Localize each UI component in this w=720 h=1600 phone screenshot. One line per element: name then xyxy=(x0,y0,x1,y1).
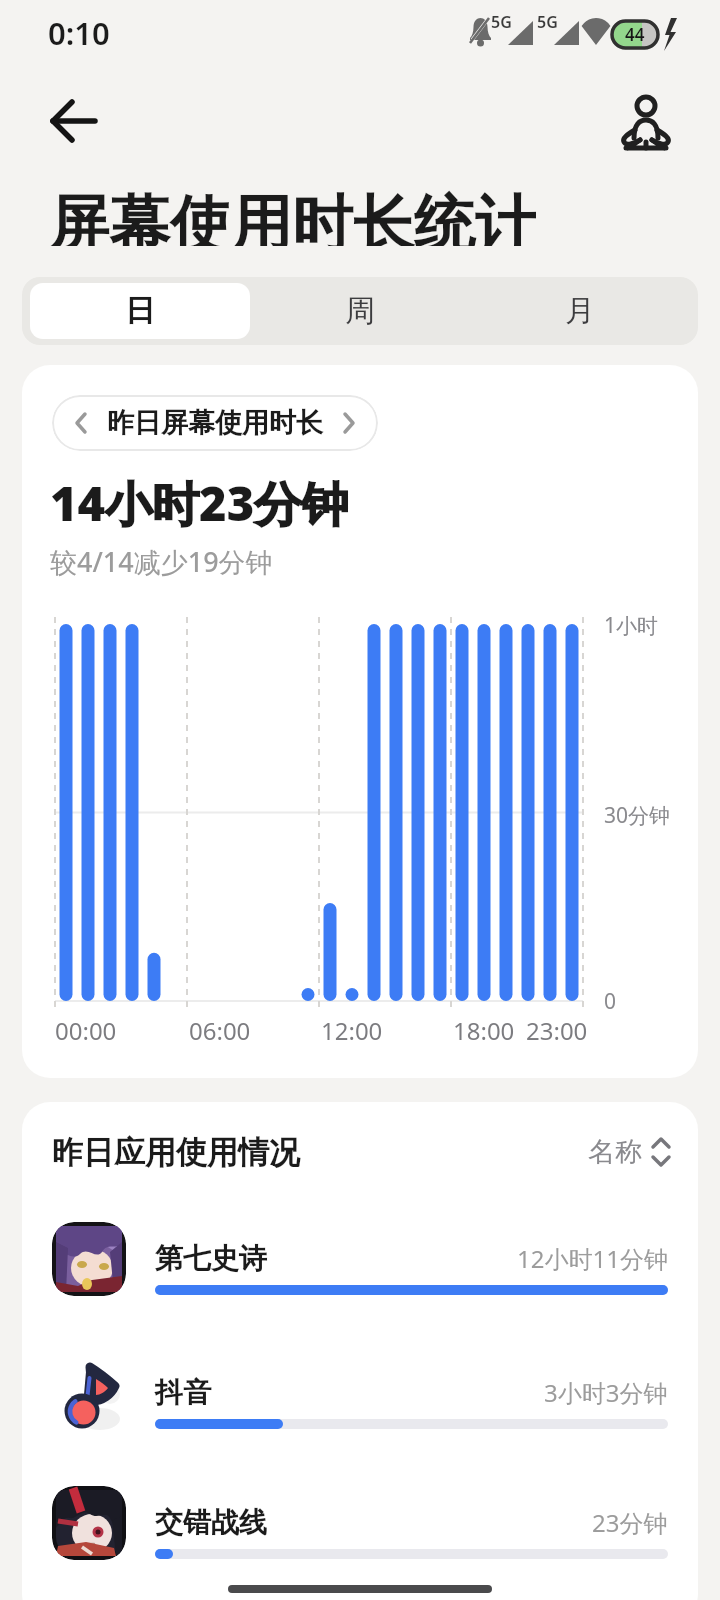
staticText: 1小时 xyxy=(604,611,659,640)
staticText: 0:10 xyxy=(48,12,110,54)
staticText: 44 xyxy=(625,23,645,46)
staticText: 3小时3分钟 xyxy=(544,1376,668,1409)
staticText: 较4/14减少19分钟 xyxy=(50,543,273,580)
staticText: 日 xyxy=(125,292,155,330)
staticText: 12小时11分钟 xyxy=(517,1242,668,1275)
staticText: 23分钟 xyxy=(592,1506,668,1539)
staticText: 抖音 xyxy=(155,1375,211,1410)
staticText: 14小时23分钟 xyxy=(50,471,349,531)
button[interactable] xyxy=(610,86,680,152)
button[interactable]: 抖音 xyxy=(22,1356,698,1468)
staticText: 06:00 xyxy=(189,1014,251,1047)
staticText: 周 xyxy=(345,292,375,330)
staticText: 30分钟 xyxy=(604,801,671,830)
staticText: 月 xyxy=(565,292,595,330)
staticText: 名称 xyxy=(588,1135,642,1169)
staticText: 交错战线 xyxy=(155,1505,267,1540)
staticText: 00:00 xyxy=(55,1014,117,1047)
staticText: 23:00 xyxy=(526,1014,588,1047)
button[interactable]: 第七史诗 xyxy=(22,1222,698,1334)
button[interactable]: 交错战线 xyxy=(22,1486,698,1598)
staticText: 0 xyxy=(604,987,617,1016)
button[interactable]: 昨日屏幕使用时长 xyxy=(52,395,378,451)
staticText: 屏幕使用时长统计 xyxy=(48,186,536,246)
staticText: 12:00 xyxy=(321,1014,383,1047)
staticText: 18:00 xyxy=(453,1014,515,1047)
button[interactable] xyxy=(40,92,106,150)
button[interactable]: 周 xyxy=(250,283,470,339)
staticText: 昨日应用使用情况 xyxy=(52,1133,300,1172)
button[interactable]: 日 xyxy=(30,283,250,339)
button[interactable]: 月 xyxy=(470,283,690,339)
staticText: 昨日屏幕使用时长 xyxy=(107,406,323,440)
staticText: 5G xyxy=(491,11,512,33)
staticText: 第七史诗 xyxy=(155,1241,267,1276)
staticText: 5G xyxy=(537,11,558,33)
button[interactable]: 名称 xyxy=(562,1122,682,1182)
